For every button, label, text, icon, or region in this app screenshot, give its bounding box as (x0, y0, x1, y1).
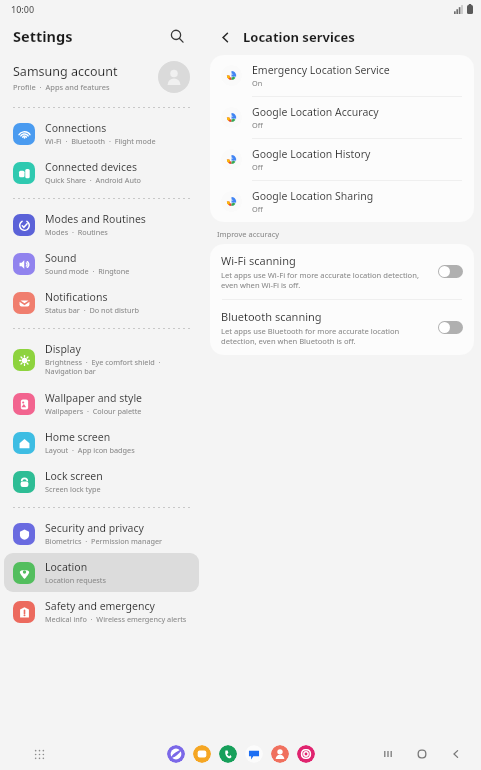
button[interactable]: Bluetooth scanning toggle (438, 321, 463, 334)
button[interactable]: Safety and emergency (4, 592, 199, 631)
staticText: Google Location History (252, 147, 371, 161)
staticText: Google Location Sharing (252, 189, 374, 203)
staticText: Home screen (45, 430, 111, 444)
button[interactable]: messages (245, 745, 263, 763)
staticText: Off (252, 162, 263, 172)
staticText: Bluetooth scanning (221, 309, 322, 324)
button[interactable]: Connected devices (4, 153, 199, 192)
button[interactable]: Sound (4, 244, 199, 283)
button[interactable]: Emergency Location Service (210, 55, 474, 96)
staticText: Screen lock type (45, 484, 101, 494)
staticText: Modes · Routines (45, 227, 108, 237)
staticText: Sound mode · Ringtone (45, 266, 130, 276)
button[interactable]: Search (165, 24, 189, 48)
button[interactable]: Connections (4, 114, 199, 153)
staticText: Modes and Routines (45, 212, 146, 226)
button[interactable]: Google Location History (210, 139, 474, 180)
button[interactable]: All apps (28, 743, 50, 765)
button[interactable]: Back (214, 26, 236, 48)
staticText: Off (252, 120, 263, 130)
staticText: Layout · App icon badges (45, 445, 135, 455)
staticText: Wallpapers · Colour palette (45, 406, 142, 416)
button[interactable]: Home (413, 745, 431, 763)
staticText: Lock screen (45, 469, 103, 483)
staticText: Security and privacy (45, 521, 144, 535)
staticText: Quick Share · Android Auto (45, 175, 141, 185)
button[interactable]: Wi-Fi scanning toggle (438, 265, 463, 278)
staticText: Let apps use Bluetooth for more accurate… (221, 326, 428, 346)
button[interactable]: Lock screen (4, 462, 199, 501)
button[interactable]: internet (167, 745, 185, 763)
staticText: Google Location Accuracy (252, 105, 379, 119)
staticText: Connections (45, 121, 107, 135)
staticText: Emergency Location Service (252, 63, 390, 77)
staticText: Settings (13, 26, 73, 46)
staticText: Profile · Apps and features (13, 82, 110, 92)
staticText: Location (45, 560, 88, 574)
staticText: Notifications (45, 290, 108, 304)
button[interactable]: instagram (297, 745, 315, 763)
button[interactable]: Notifications (4, 283, 199, 322)
staticText: Improve accuracy (217, 229, 280, 239)
staticText: Let apps use Wi-Fi for more accurate loc… (221, 270, 428, 290)
staticText: Sound (45, 251, 77, 265)
staticText: Brightness · Eye comfort shield · Naviga… (45, 357, 191, 377)
staticText: Medical info · Wireless emergency alerts (45, 614, 187, 624)
staticText: 10:00 (11, 3, 35, 15)
staticText: On (252, 78, 263, 88)
button[interactable]: Google Location Sharing (210, 181, 474, 222)
staticText: Samsung account (13, 63, 118, 80)
button[interactable]: Back (447, 745, 465, 763)
button[interactable]: Bluetooth scanning (210, 300, 474, 355)
button[interactable]: contacts (271, 745, 289, 763)
staticText: Wi-Fi · Bluetooth · Flight mode (45, 136, 156, 146)
staticText: Biometrics · Permission manager (45, 536, 163, 546)
button[interactable]: Samsung account (0, 53, 203, 101)
staticText: Connected devices (45, 160, 138, 174)
button[interactable]: Location (4, 553, 199, 592)
staticText: Status bar · Do not disturb (45, 305, 140, 315)
button[interactable]: Modes and Routines (4, 205, 199, 244)
staticText: Location requests (45, 575, 106, 585)
staticText: Wi-Fi scanning (221, 253, 296, 268)
staticText: Location services (243, 28, 355, 46)
button[interactable]: Wi-Fi scanning (210, 244, 474, 299)
button[interactable]: files (193, 745, 211, 763)
button[interactable]: Recents (379, 745, 397, 763)
staticText: Off (252, 204, 263, 214)
staticText: Wallpaper and style (45, 391, 143, 405)
button[interactable]: Security and privacy (4, 514, 199, 553)
button[interactable]: Display (4, 335, 199, 384)
button[interactable]: Google Location Accuracy (210, 97, 474, 138)
button[interactable]: Home screen (4, 423, 199, 462)
staticText: Safety and emergency (45, 599, 155, 613)
staticText: Display (45, 342, 81, 356)
button[interactable]: phone (219, 745, 237, 763)
button[interactable]: Wallpaper and style (4, 384, 199, 423)
